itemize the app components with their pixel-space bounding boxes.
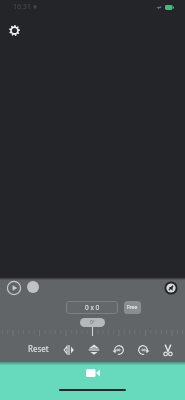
button[interactable]: Record video [82,362,104,384]
staticText: 0 x 0 [85,303,100,312]
button[interactable]: Free [124,301,141,314]
button[interactable]: Mute [162,279,179,296]
staticText: Free [127,304,138,311]
button[interactable]: 0 x 0 [66,301,118,314]
button[interactable]: Rotate right [134,341,152,359]
button[interactable]: Flip vertical [85,341,103,359]
button[interactable]: Record [27,281,39,293]
staticText: 16:31 [13,2,31,12]
staticText: 0° [90,319,96,326]
button[interactable]: Flip horizontal [60,341,78,359]
button[interactable]: Crop [159,341,177,359]
button[interactable]: Settings [4,20,24,40]
button[interactable]: Play [5,279,22,296]
staticText: Reset [28,343,49,354]
button[interactable]: Reset [22,339,54,357]
button[interactable]: 0° [80,318,105,327]
button[interactable]: Rotate left [110,341,128,359]
